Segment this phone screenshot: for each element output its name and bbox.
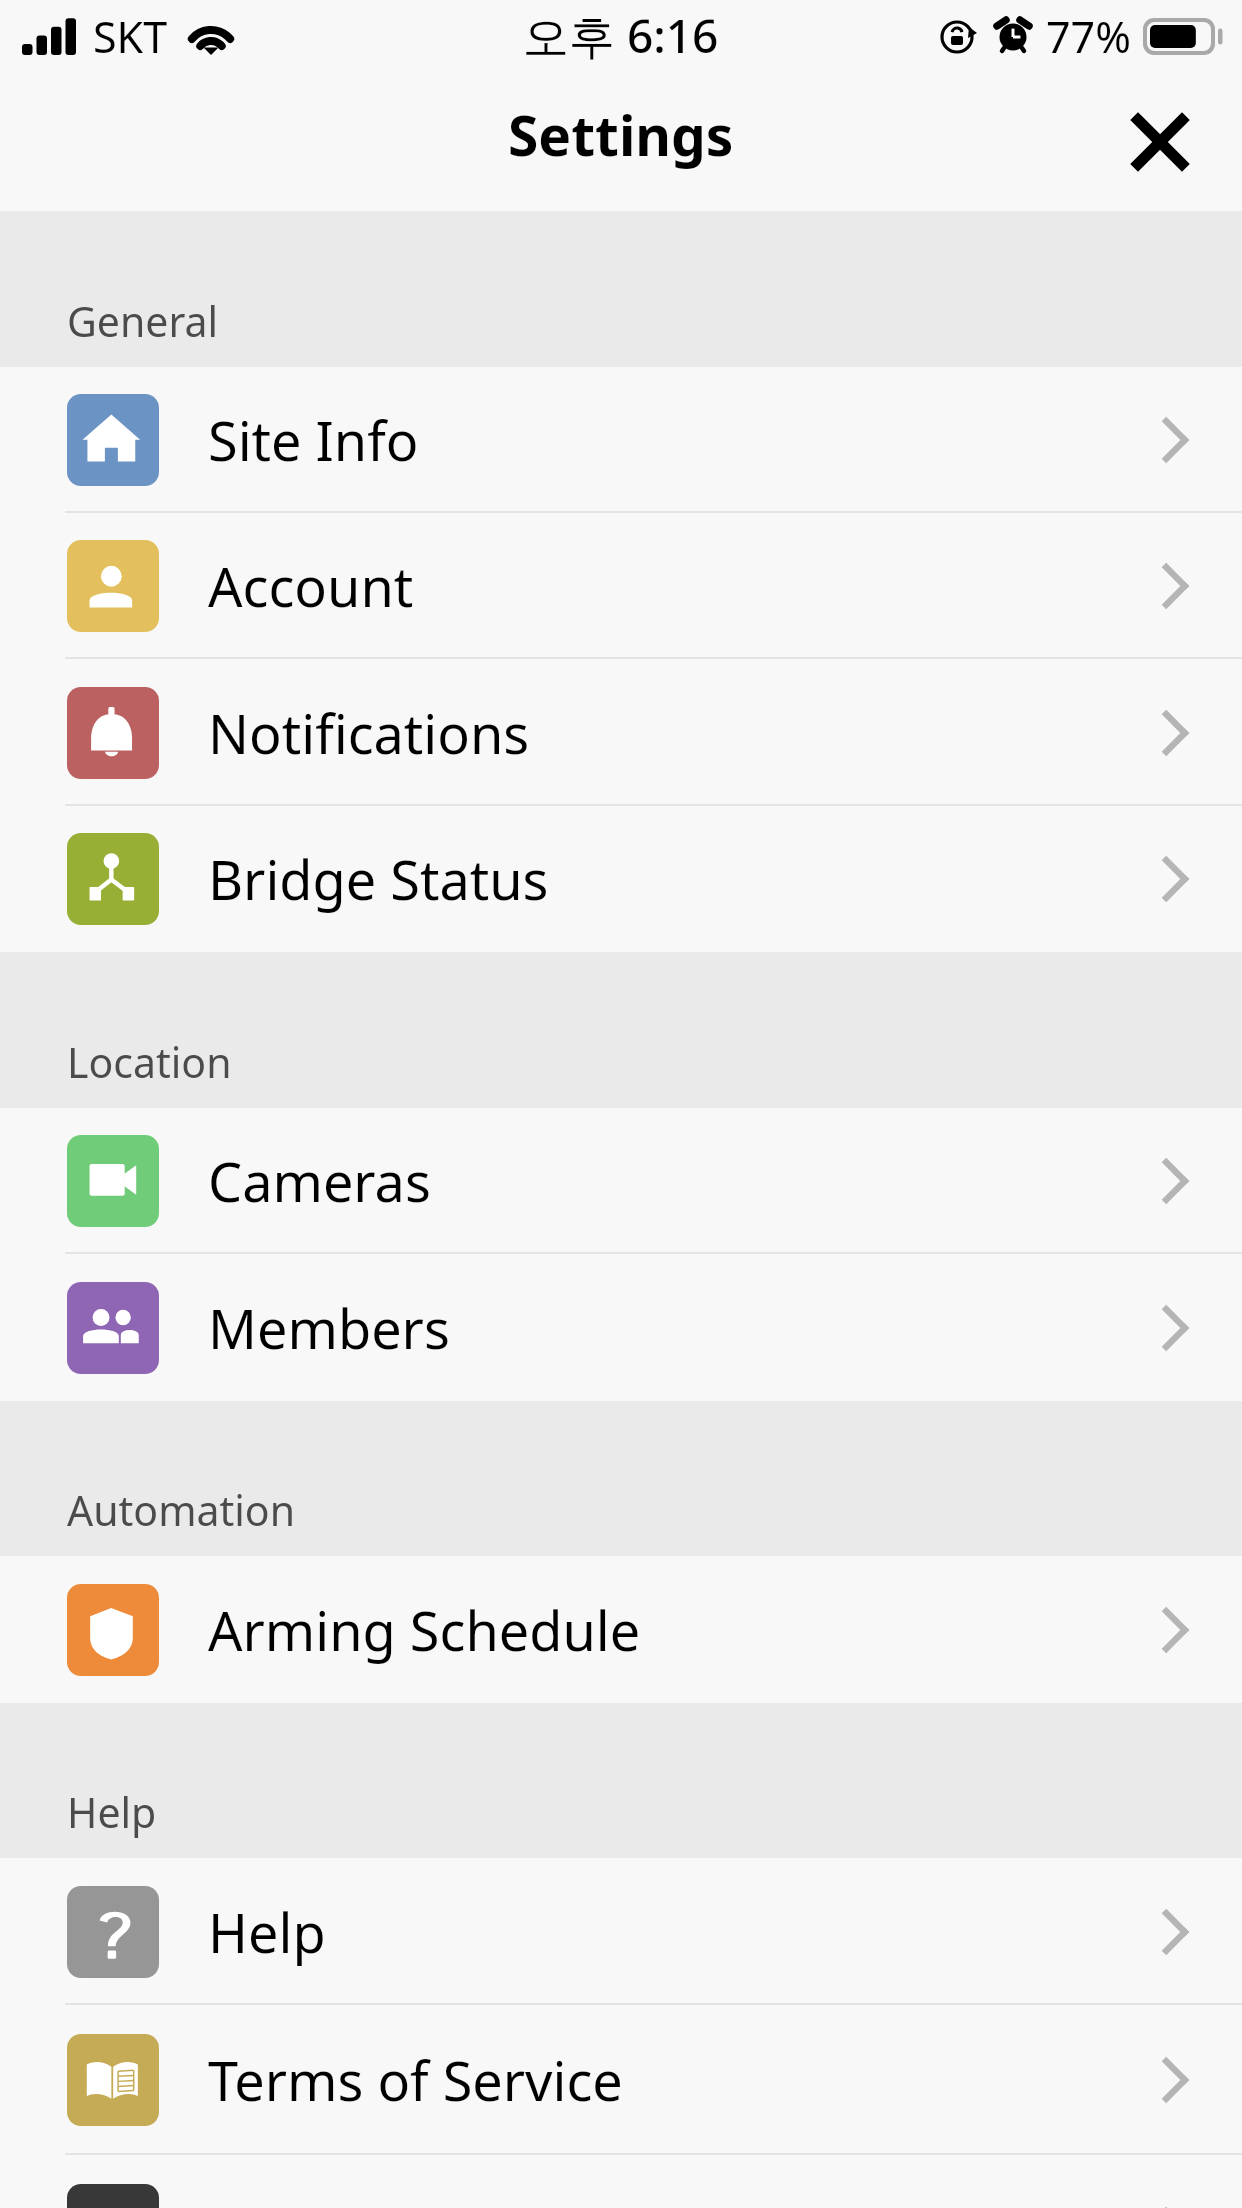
staticText: Help [67,1784,157,1840]
button[interactable]: Bridge Status [0,806,1242,952]
button[interactable]: Members [0,1254,1242,1401]
staticText: 77% [1046,7,1131,66]
staticText: Arming Schedule [208,1593,641,1667]
button[interactable]: Help [0,1858,1242,2005]
staticText: Location [67,1034,232,1090]
button[interactable]: Notifications [0,659,1242,806]
staticText: Bridge Status [208,842,549,916]
staticText: Account [208,549,414,623]
staticText: Site Info [208,403,419,477]
staticText: Notifications [208,696,530,770]
staticText: Automation [67,1482,296,1538]
button[interactable]: Terms of Service [0,2005,1242,2155]
button[interactable]: Privacy Policy [0,2155,1242,2208]
staticText: SKT [93,7,168,66]
button[interactable]: Account [0,513,1242,659]
staticText: Settings [508,97,734,172]
staticText: Members [208,1291,450,1365]
button[interactable]: Close [1112,94,1208,190]
staticText: Terms of Service [208,2043,623,2117]
staticText: General [67,293,219,349]
staticText: 오후 6:16 [523,4,719,67]
button[interactable]: Cameras [0,1108,1242,1254]
staticText: Help [208,1895,326,1969]
button[interactable]: Site Info [0,367,1242,513]
staticText: Cameras [208,1144,431,1218]
button[interactable]: Arming Schedule [0,1556,1242,1703]
